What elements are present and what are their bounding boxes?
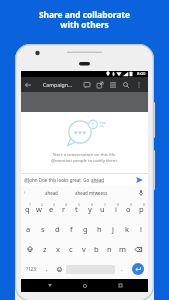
button[interactable]: , <box>41 259 53 279</box>
button[interactable]: x <box>51 239 64 259</box>
staticText: x <box>56 244 60 254</box>
staticText: v <box>82 244 86 254</box>
staticText: b <box>94 244 99 254</box>
staticText: 5 <box>78 202 80 207</box>
button[interactable]: Comments <box>80 77 93 92</box>
staticText: 9 <box>130 202 132 207</box>
button[interactable]: z <box>39 239 51 259</box>
staticText: k <box>125 224 130 234</box>
button[interactable]: Search <box>119 77 132 92</box>
button[interactable]: Home <box>77 279 92 292</box>
staticText: w <box>36 204 42 214</box>
staticText: z <box>43 244 47 254</box>
staticText: t <box>75 204 78 214</box>
staticText: Campaign... <box>43 81 73 88</box>
button[interactable]: f <box>64 219 78 239</box>
staticText: h <box>97 224 102 234</box>
button[interactable]: k <box>120 219 134 239</box>
button[interactable]: Voice input <box>136 188 145 197</box>
staticText: 1 <box>29 202 31 207</box>
button[interactable]: v <box>77 239 90 259</box>
staticText: m <box>119 244 127 254</box>
staticText: ahead mtweess <box>75 190 108 196</box>
staticText: f <box>70 224 73 234</box>
button[interactable]: More options <box>132 77 145 92</box>
button[interactable]: . <box>116 259 128 279</box>
button[interactable]: w <box>33 199 45 219</box>
staticText: , <box>46 265 48 273</box>
button[interactable]: t <box>70 199 83 219</box>
staticText: 3 <box>53 202 55 207</box>
staticText: n <box>107 244 112 254</box>
button[interactable]: Navigate up <box>21 77 34 92</box>
button[interactable]: u <box>96 199 109 219</box>
staticText: 7 <box>104 202 106 207</box>
button[interactable]: ?123 <box>21 259 41 279</box>
button[interactable]: Emoji <box>53 259 65 279</box>
button[interactable]: m <box>116 239 129 259</box>
staticText: . <box>121 265 123 273</box>
button[interactable]: e <box>45 199 57 219</box>
staticText: 0 <box>143 202 145 207</box>
button[interactable]: Shift <box>21 239 39 259</box>
button[interactable]: Enter <box>128 259 148 279</box>
button[interactable]: Send <box>134 174 145 185</box>
button[interactable]: Recent apps <box>113 279 128 292</box>
staticText: › <box>24 189 26 196</box>
staticText: Start a conversation on this file. @ment… <box>21 151 148 163</box>
staticText: p <box>139 204 144 214</box>
button[interactable]: l <box>134 219 148 239</box>
staticText: a <box>26 224 31 234</box>
staticText: 2 <box>41 202 43 207</box>
staticText: l <box>140 224 142 234</box>
button[interactable]: o <box>122 199 135 219</box>
staticText: d <box>55 224 60 234</box>
staticText: r <box>62 204 66 214</box>
button[interactable]: c <box>64 239 77 259</box>
staticText: g <box>83 224 88 234</box>
staticText: 8:00 <box>137 71 146 77</box>
button[interactable]: d <box>50 219 64 239</box>
button[interactable]: View <box>106 77 119 92</box>
staticText: ahead <box>91 177 105 183</box>
button[interactable]: Share <box>93 77 106 92</box>
button[interactable]: h <box>92 219 106 239</box>
staticText: 8 <box>117 202 119 207</box>
staticText: 4 <box>65 202 67 207</box>
button[interactable]: s <box>36 219 50 239</box>
button[interactable]: g <box>78 219 92 239</box>
staticText: u <box>100 204 105 214</box>
button[interactable]: q <box>21 199 33 219</box>
staticText: ahead <box>45 190 58 196</box>
staticText: 6 <box>91 202 93 207</box>
button[interactable]: p <box>135 199 148 219</box>
button[interactable]: j <box>106 219 120 239</box>
button[interactable]: Back <box>42 279 57 292</box>
button[interactable]: i <box>109 199 122 219</box>
staticText: e <box>49 204 54 214</box>
button[interactable]: n <box>103 239 116 259</box>
staticText: ?123 <box>26 266 36 272</box>
button[interactable]: a <box>21 219 36 239</box>
button[interactable]: Backspace <box>129 239 148 259</box>
staticText: s <box>41 224 45 234</box>
staticText: j <box>112 224 114 234</box>
staticText: c <box>69 244 73 254</box>
staticText: y <box>88 204 92 214</box>
button[interactable]: b <box>90 239 103 259</box>
staticText: q <box>25 204 30 214</box>
staticText: @John Doe this looks great. Go <box>24 177 91 183</box>
button[interactable]: y <box>83 199 96 219</box>
button[interactable]: r <box>57 199 70 219</box>
staticText: i <box>115 204 117 214</box>
staticText: Share and collaborate with others <box>0 9 169 31</box>
staticText: o <box>126 204 131 214</box>
